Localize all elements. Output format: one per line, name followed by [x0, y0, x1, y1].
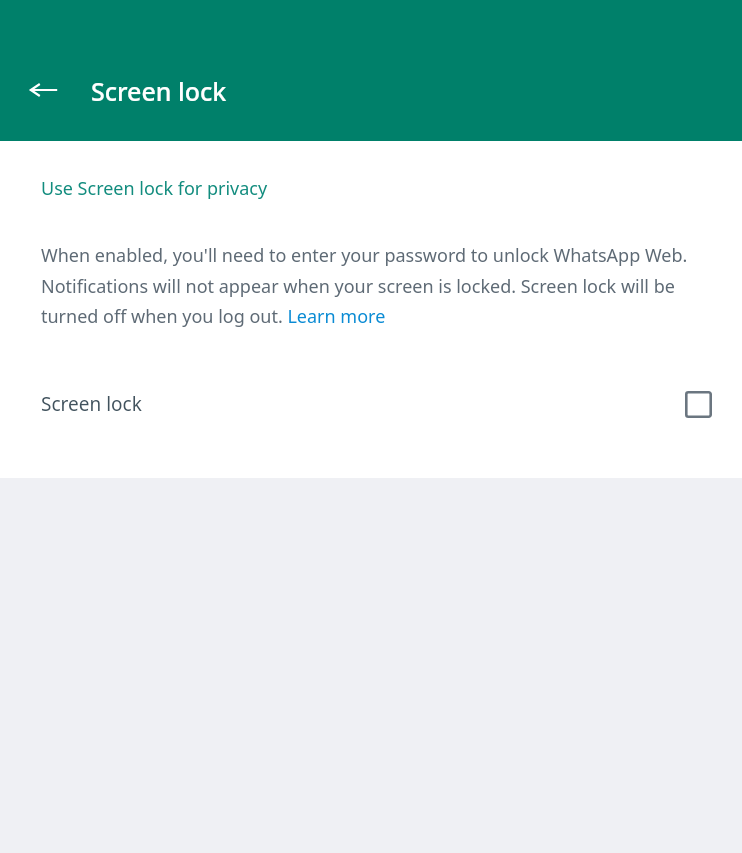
staticText: Screen lock	[41, 391, 142, 417]
staticText: Screen lock	[91, 74, 227, 108]
button[interactable]: Back	[20, 66, 68, 114]
staticText: When enabled, you'll need to enter your …	[41, 243, 704, 328]
staticText: Use Screen lock for privacy	[41, 176, 268, 201]
button[interactable]: Screen lock	[0, 376, 742, 432]
